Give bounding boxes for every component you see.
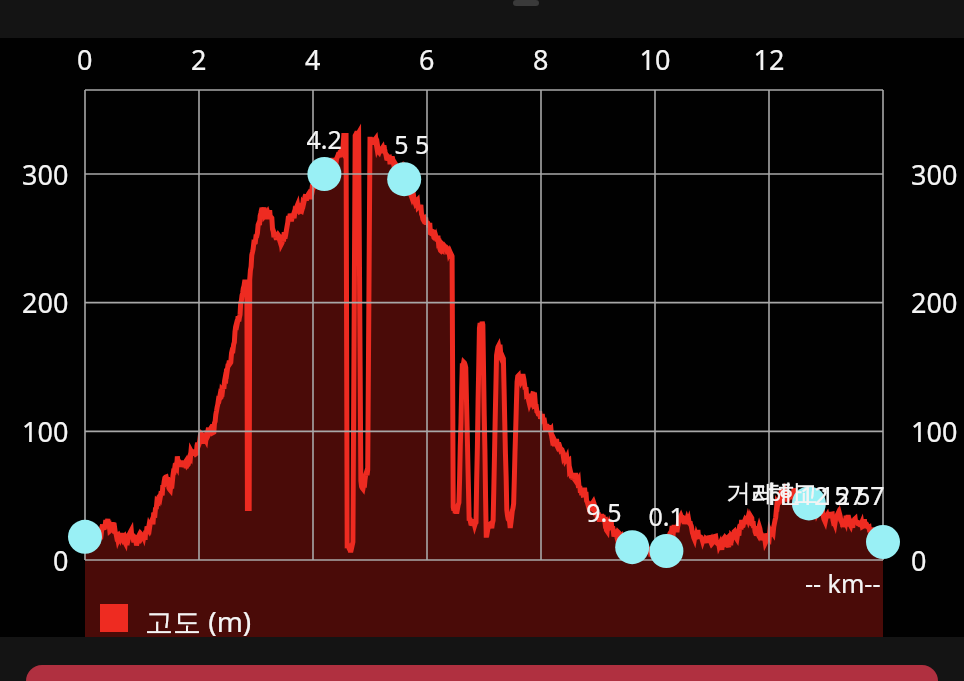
button[interactable]: Elevation profile chart (0, 0, 964, 681)
